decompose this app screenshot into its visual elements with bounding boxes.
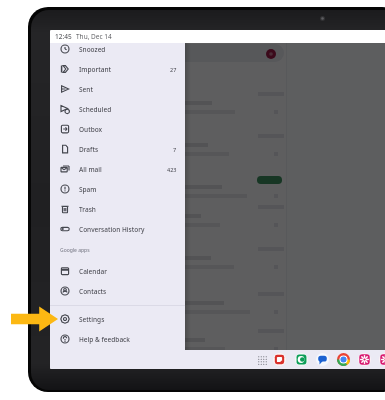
staticText: Snoozed (79, 45, 106, 54)
button[interactable]: Help & feedback (50, 329, 185, 349)
button[interactable]: photos (379, 353, 385, 366)
button[interactable]: Calendar (50, 261, 185, 281)
button[interactable]: phone (295, 353, 308, 366)
button[interactable]: Settings (50, 309, 185, 329)
staticText: 12:45 (55, 32, 72, 41)
button[interactable]: All apps (258, 356, 267, 365)
staticText: Trash (79, 205, 96, 214)
button[interactable]: Snoozed (50, 39, 185, 59)
staticText: Contacts (79, 287, 107, 296)
staticText: 423 (167, 166, 177, 173)
staticText: Google apps (60, 247, 90, 254)
staticText: All mail (79, 165, 102, 174)
staticText: Conversation History (79, 225, 145, 234)
button[interactable]: chrome (337, 353, 350, 366)
button[interactable]: Contacts (50, 281, 185, 301)
staticText: Help & feedback (79, 335, 130, 344)
staticText: Settings (79, 315, 105, 324)
other: Pointer to Settings (11, 306, 58, 332)
button[interactable]: keep (273, 353, 286, 366)
staticText: Drafts (79, 145, 99, 154)
button[interactable]: messages (316, 353, 329, 366)
staticText: Outbox (79, 125, 103, 134)
button[interactable]: Trash (50, 199, 185, 219)
staticText: Sent (79, 85, 93, 94)
staticText: 7 (173, 146, 177, 153)
button[interactable]: Drafts (50, 139, 185, 159)
staticText: Scheduled (79, 105, 112, 114)
staticText: Calendar (79, 267, 107, 276)
staticText: Spam (79, 185, 97, 194)
button[interactable]: Important (50, 59, 185, 79)
button[interactable]: Sent (50, 79, 185, 99)
staticText: Thu, Dec 14 (76, 32, 112, 41)
button[interactable]: Conversation History (50, 219, 185, 239)
staticText: Important (79, 65, 111, 74)
button[interactable]: Outbox (50, 119, 185, 139)
button[interactable]: All mail (50, 159, 185, 179)
button[interactable]: photos (358, 353, 371, 366)
button[interactable]: Scheduled (50, 99, 185, 119)
staticText: 27 (170, 66, 177, 73)
button[interactable]: Spam (50, 179, 185, 199)
